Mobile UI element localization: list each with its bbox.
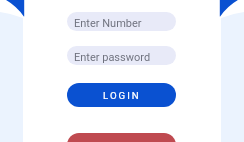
- staticText: Enter password: [74, 51, 151, 64]
- button[interactable]: Register: [67, 133, 176, 142]
- button[interactable]: Enter password: [67, 46, 176, 65]
- staticText: Enter Number: [74, 17, 142, 30]
- staticText: LOGIN: [103, 90, 141, 101]
- button[interactable]: Login: [67, 83, 176, 107]
- button[interactable]: Enter Number: [67, 12, 176, 31]
